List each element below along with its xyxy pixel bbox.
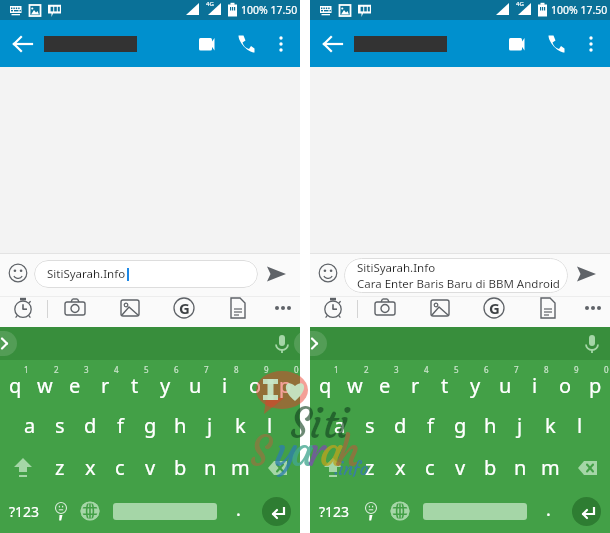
button[interactable]: Emoji	[47, 489, 75, 533]
button[interactable]: Send	[572, 260, 600, 288]
button[interactable]: Timer	[9, 294, 37, 322]
button[interactable]: m	[225, 446, 255, 489]
button[interactable]: More	[269, 294, 297, 322]
button[interactable]: Call	[226, 24, 266, 64]
button[interactable]: 5	[120, 360, 150, 404]
button[interactable]: 8	[520, 360, 550, 404]
button[interactable]: 4	[90, 360, 120, 404]
button[interactable]: Camera	[371, 294, 399, 322]
button[interactable]: 9	[240, 360, 270, 404]
button[interactable]: 7	[180, 360, 210, 404]
button[interactable]: Document	[534, 294, 562, 322]
button[interactable]: Shift	[0, 446, 45, 489]
button[interactable]: 8	[210, 360, 240, 404]
button[interactable]: Timer	[319, 294, 347, 322]
button[interactable]: 0	[580, 360, 610, 404]
button[interactable]: d	[75, 404, 105, 446]
button[interactable]: 5	[430, 360, 460, 404]
button[interactable]: h	[475, 404, 505, 446]
button[interactable]: n	[505, 446, 535, 489]
button[interactable]: a	[15, 404, 45, 446]
button[interactable]: Backspace	[565, 446, 610, 489]
button[interactable]: x	[75, 446, 105, 489]
button[interactable]: Space	[108, 489, 222, 533]
button[interactable]: Change language	[76, 489, 104, 533]
button[interactable]: m	[535, 446, 565, 489]
button[interactable]: SitiSyarah.Info	[34, 260, 258, 288]
button[interactable]: z	[355, 446, 385, 489]
button[interactable]: Back	[313, 24, 353, 64]
button[interactable]: .	[224, 489, 252, 533]
button[interactable]: 1	[0, 360, 30, 404]
button[interactable]: b	[165, 446, 195, 489]
button[interactable]: Change language	[386, 489, 414, 533]
button[interactable]: 9	[550, 360, 580, 404]
button[interactable]: b	[475, 446, 505, 489]
button[interactable]: 7	[490, 360, 520, 404]
button[interactable]: 2	[340, 360, 370, 404]
button[interactable]: v	[135, 446, 165, 489]
staticText: 6	[484, 364, 489, 375]
button[interactable]: 6	[460, 360, 490, 404]
button[interactable]: 1	[310, 360, 340, 404]
button[interactable]: d	[385, 404, 415, 446]
button[interactable]: x	[385, 446, 415, 489]
button[interactable]: n	[195, 446, 225, 489]
button[interactable]: Gallery	[116, 294, 144, 322]
button[interactable]: h	[165, 404, 195, 446]
button[interactable]: 3	[370, 360, 400, 404]
button[interactable]: Document	[224, 294, 252, 322]
button[interactable]: Video call	[496, 24, 536, 64]
button[interactable]: Voice input	[574, 327, 610, 360]
button[interactable]: .	[534, 489, 562, 533]
button[interactable]: Back	[3, 24, 43, 64]
button[interactable]: 3	[60, 360, 90, 404]
button[interactable]: k	[535, 404, 565, 446]
button[interactable]: More	[579, 294, 607, 322]
button[interactable]: More options	[261, 24, 301, 64]
button[interactable]: a	[325, 404, 355, 446]
button[interactable]: Emoji	[4, 259, 31, 286]
button[interactable]: g	[135, 404, 165, 446]
button[interactable]: z	[45, 446, 75, 489]
button[interactable]: Shift	[310, 446, 355, 489]
button[interactable]: ?123	[310, 489, 358, 533]
button[interactable]: Google	[480, 294, 508, 322]
button[interactable]: Enter	[562, 489, 610, 533]
button[interactable]: c	[415, 446, 445, 489]
button[interactable]: j	[505, 404, 535, 446]
button[interactable]: j	[195, 404, 225, 446]
button[interactable]: Video call	[186, 24, 226, 64]
button[interactable]: s	[45, 404, 75, 446]
button[interactable]: Google	[170, 294, 198, 322]
button[interactable]: k	[225, 404, 255, 446]
button[interactable]: f	[105, 404, 135, 446]
button[interactable]: 4	[400, 360, 430, 404]
button[interactable]: Emoji	[357, 489, 385, 533]
staticText: i	[222, 372, 228, 399]
button[interactable]: 0	[270, 360, 300, 404]
button[interactable]: Emoji	[314, 259, 341, 286]
button[interactable]: Expand suggestions	[0, 331, 17, 356]
button[interactable]: Enter	[252, 489, 300, 533]
button[interactable]: Expand suggestions	[294, 331, 327, 356]
button[interactable]: l	[565, 404, 595, 446]
button[interactable]: v	[445, 446, 475, 489]
button[interactable]: Call	[536, 24, 576, 64]
button[interactable]: Gallery	[426, 294, 454, 322]
button[interactable]: l	[255, 404, 285, 446]
button[interactable]: g	[445, 404, 475, 446]
button[interactable]: c	[105, 446, 135, 489]
button[interactable]: SitiSyarah.Info	[344, 258, 568, 293]
button[interactable]: More options	[571, 24, 610, 64]
button[interactable]: Camera	[61, 294, 89, 322]
button[interactable]: Voice input	[264, 327, 300, 360]
button[interactable]: f	[415, 404, 445, 446]
button[interactable]: Backspace	[255, 446, 300, 489]
button[interactable]: 6	[150, 360, 180, 404]
button[interactable]: Space	[418, 489, 532, 533]
button[interactable]: 2	[30, 360, 60, 404]
button[interactable]: s	[355, 404, 385, 446]
button[interactable]: Send	[262, 260, 290, 288]
button[interactable]: ?123	[0, 489, 48, 533]
